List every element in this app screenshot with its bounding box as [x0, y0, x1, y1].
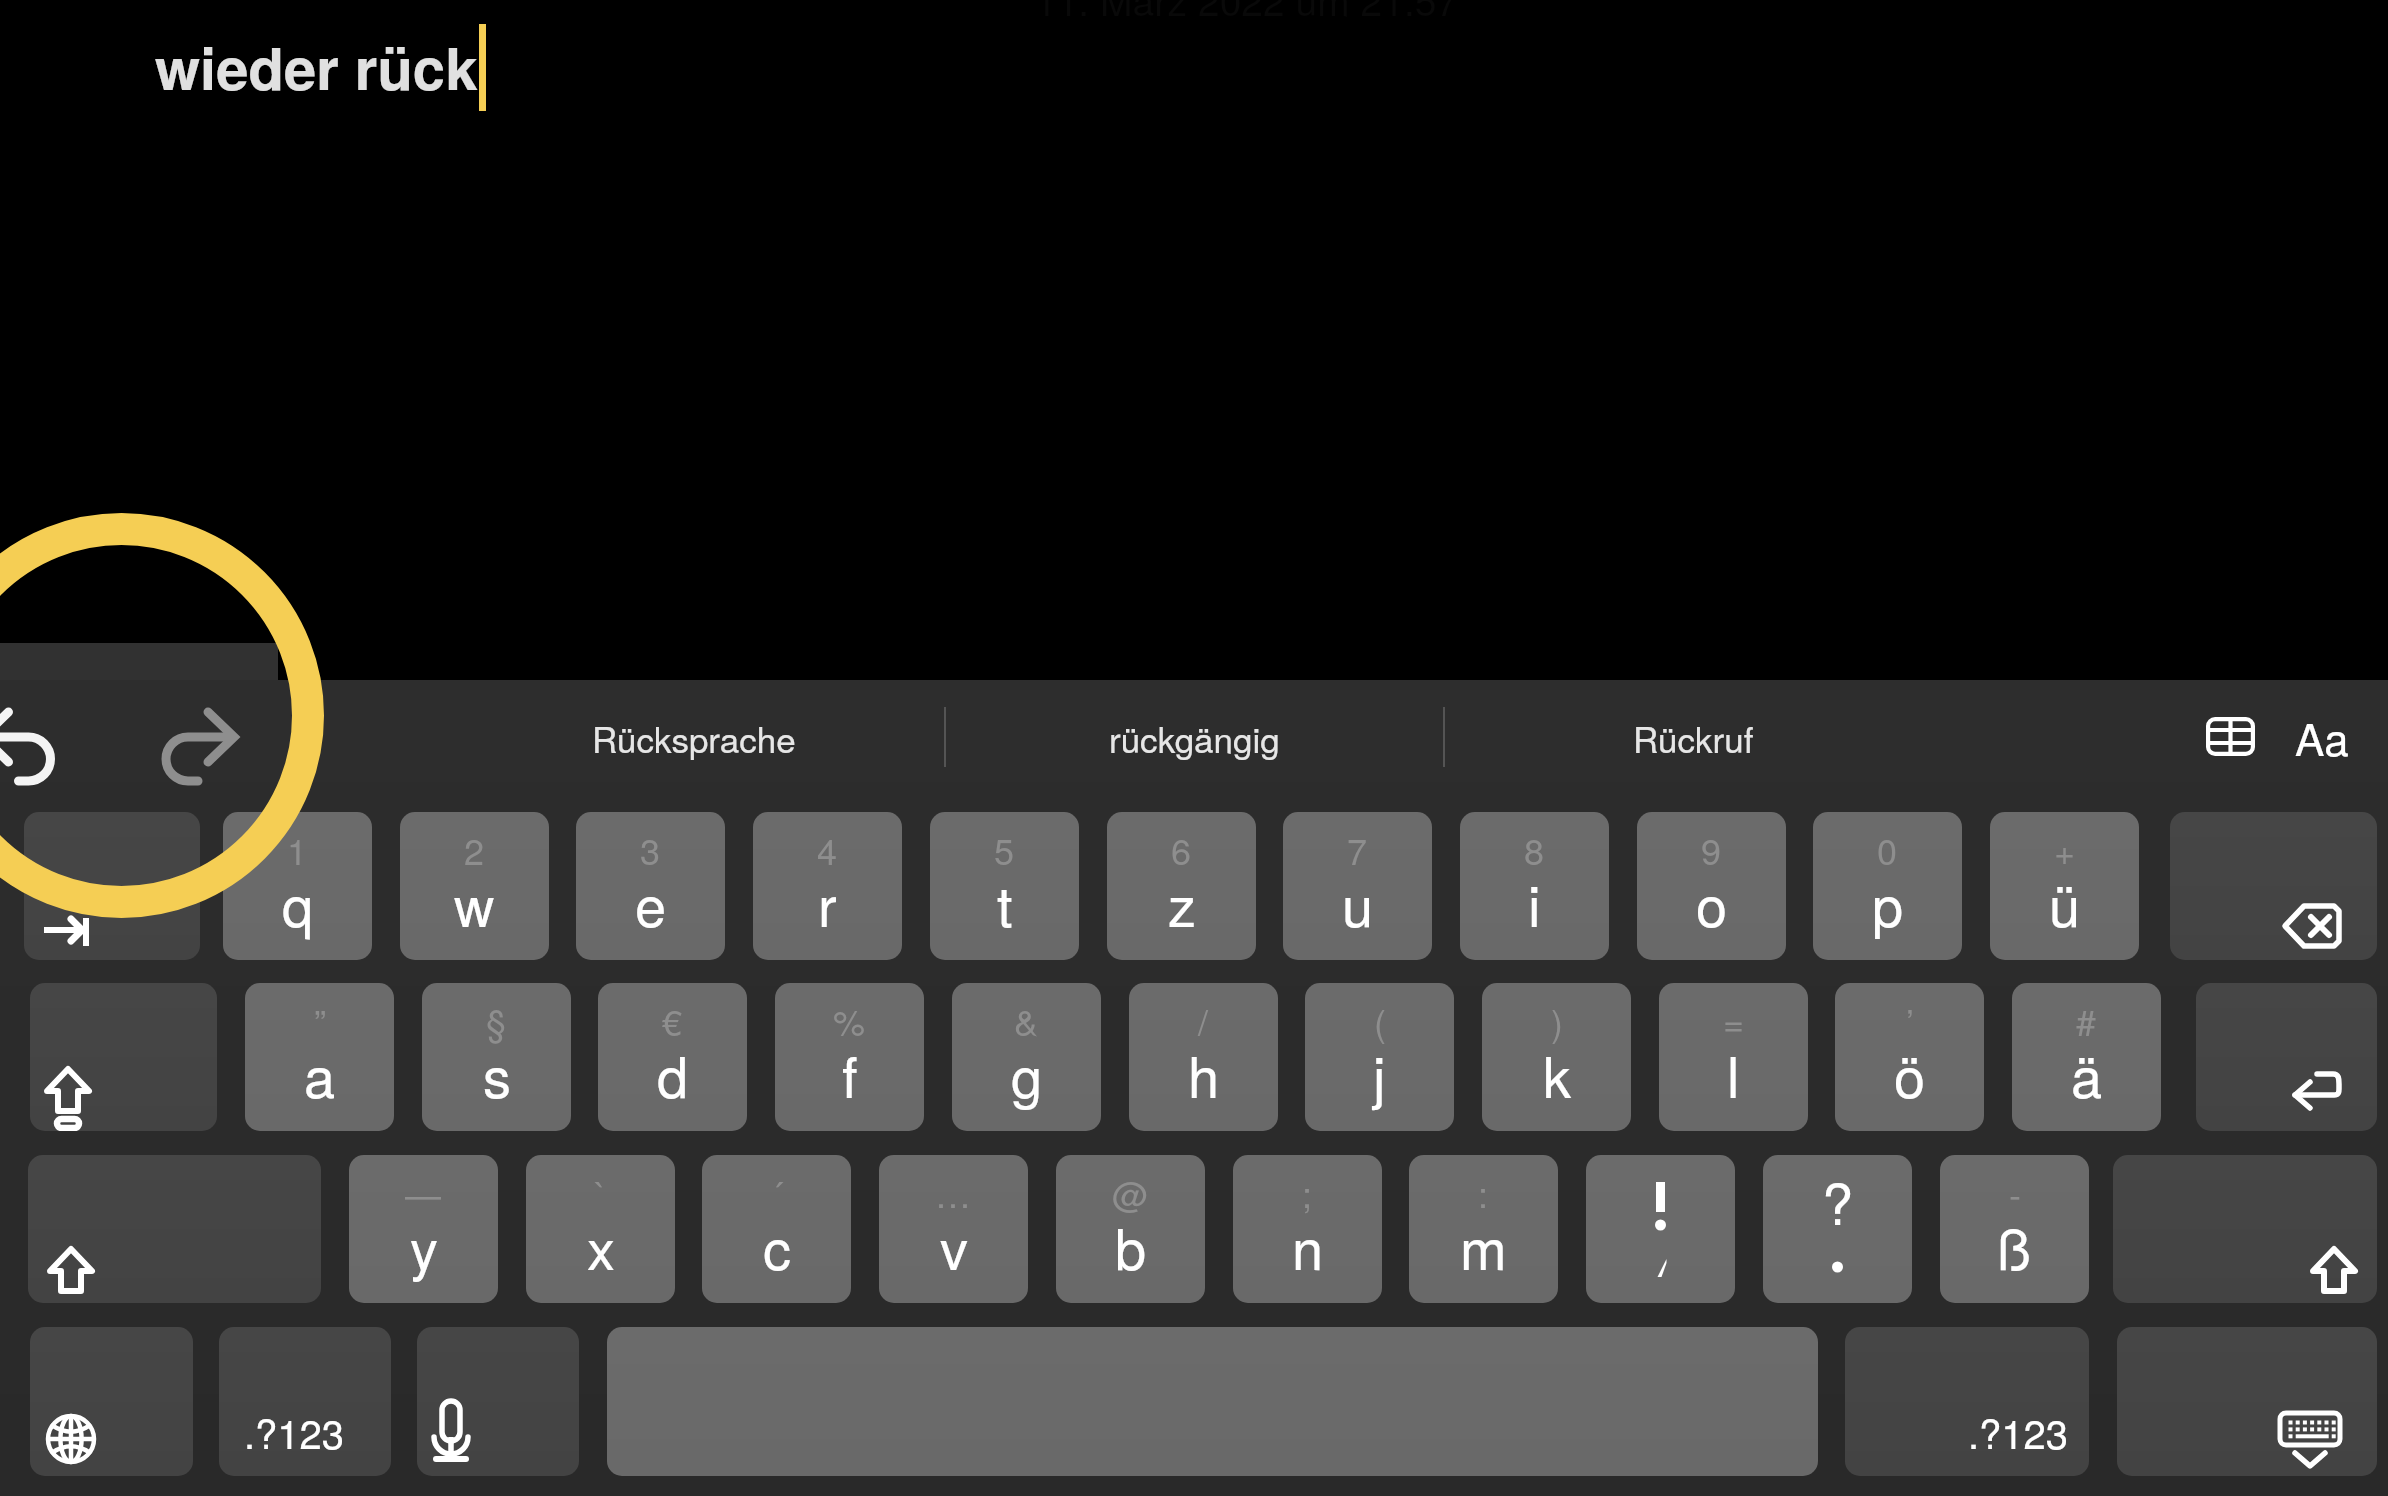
staticText: a	[304, 1034, 336, 1114]
staticText: ’	[1906, 995, 1914, 1047]
button[interactable]: Redo	[118, 694, 258, 824]
staticText: i	[1528, 863, 1541, 943]
staticText: d	[657, 1034, 689, 1114]
staticText: f	[842, 1034, 858, 1114]
button[interactable]: (	[1305, 983, 1454, 1131]
button[interactable]: 4	[753, 812, 902, 960]
staticText: ü	[2049, 863, 2081, 943]
staticText: rückgängig	[1109, 713, 1280, 763]
staticText: ß	[1997, 1206, 2032, 1286]
button[interactable]: #	[2012, 983, 2161, 1131]
staticText: r	[818, 863, 837, 943]
staticText: .?123	[1968, 1403, 2069, 1460]
button[interactable]: Rücksprache	[432, 692, 956, 784]
button[interactable]: Tab	[24, 812, 200, 960]
staticText: ;	[1302, 1167, 1313, 1219]
button[interactable]: Backspace	[2170, 812, 2377, 960]
button[interactable]: ;	[1233, 1155, 1382, 1303]
button[interactable]: `	[526, 1155, 675, 1303]
button[interactable]: ’	[1835, 983, 1984, 1131]
staticText: 6	[1171, 824, 1192, 876]
staticText: )	[1551, 995, 1563, 1047]
staticText: y	[410, 1206, 438, 1286]
button[interactable]: %	[775, 983, 924, 1131]
staticText: ö	[1894, 1034, 1926, 1114]
staticText: €	[662, 995, 683, 1047]
staticText: b	[1115, 1206, 1147, 1286]
button[interactable]: &	[952, 983, 1101, 1131]
staticText: Rückruf	[1633, 713, 1754, 763]
staticText: =	[1723, 995, 1745, 1047]
button[interactable]: ?	[1763, 1155, 1912, 1303]
button[interactable]: 3	[576, 812, 725, 960]
button[interactable]: Switch keyboard	[30, 1327, 193, 1476]
staticText: ä	[2071, 1034, 2103, 1114]
button[interactable]: 1	[223, 812, 372, 960]
staticText: Aa	[2295, 705, 2349, 768]
button[interactable]: )	[1482, 983, 1631, 1131]
staticText: x	[587, 1206, 615, 1286]
staticText: t	[997, 863, 1013, 943]
staticText: z	[1168, 863, 1196, 943]
button[interactable]: …	[879, 1155, 1028, 1303]
button[interactable]: Caps lock	[30, 983, 217, 1131]
button[interactable]: Hide keyboard	[2117, 1327, 2377, 1476]
button[interactable]: —	[349, 1155, 498, 1303]
staticText: +	[2054, 824, 2076, 876]
staticText: 4	[817, 824, 838, 876]
button[interactable]: 2	[400, 812, 549, 960]
button[interactable]: Undo	[0, 694, 68, 824]
staticText: n	[1292, 1206, 1324, 1286]
staticText: q	[282, 863, 314, 943]
button[interactable]: Shift	[2113, 1155, 2377, 1303]
button[interactable]: Semicolon	[1586, 1155, 1735, 1303]
staticText: §	[486, 995, 507, 1047]
button[interactable]: 9	[1637, 812, 1786, 960]
button[interactable]: 8	[1460, 812, 1609, 960]
staticText: v	[940, 1206, 968, 1286]
button[interactable]: .?123	[1845, 1327, 2089, 1476]
button[interactable]: =	[1659, 983, 1808, 1131]
button[interactable]: rückgängig	[945, 692, 1443, 784]
button[interactable]: ”	[245, 983, 394, 1131]
staticText: `	[595, 1167, 607, 1219]
staticText: h	[1188, 1034, 1220, 1114]
staticText: ?	[1822, 1161, 1854, 1241]
button[interactable]: Aa	[2278, 700, 2366, 772]
staticText: j	[1373, 1034, 1386, 1114]
staticText: %	[833, 995, 866, 1047]
staticText: l	[1727, 1034, 1740, 1114]
button[interactable]: Dictate	[417, 1327, 579, 1476]
staticText: &	[1014, 995, 1039, 1047]
button[interactable]: Insert table	[2186, 700, 2274, 772]
button[interactable]: .?123	[219, 1327, 391, 1476]
button[interactable]: Shift	[28, 1155, 321, 1303]
button[interactable]: Rückruf	[1444, 692, 1942, 784]
staticText: 5	[994, 824, 1015, 876]
button[interactable]: 6	[1107, 812, 1256, 960]
button[interactable]: 0	[1813, 812, 1962, 960]
button[interactable]: @	[1056, 1155, 1205, 1303]
button[interactable]: 5	[930, 812, 1079, 960]
button[interactable]: §	[422, 983, 571, 1131]
staticText: s	[483, 1034, 511, 1114]
staticText: 1	[287, 824, 308, 876]
button[interactable]: €	[598, 983, 747, 1131]
staticText: —	[405, 1167, 442, 1219]
button[interactable]: :	[1409, 1155, 1558, 1303]
staticText: ”	[314, 995, 326, 1047]
staticText: g	[1011, 1034, 1043, 1114]
button[interactable]: 7	[1283, 812, 1432, 960]
staticText: o	[1696, 863, 1728, 943]
staticText: ´	[771, 1167, 783, 1219]
button[interactable]: Return	[2196, 983, 2377, 1131]
button[interactable]: ´	[702, 1155, 851, 1303]
button[interactable]: -	[1940, 1155, 2089, 1303]
staticText: …	[935, 1167, 972, 1219]
button[interactable]: /	[1129, 983, 1278, 1131]
staticText: 9	[1701, 824, 1722, 876]
staticText: 7	[1347, 824, 1368, 876]
button[interactable]: +	[1990, 812, 2139, 960]
